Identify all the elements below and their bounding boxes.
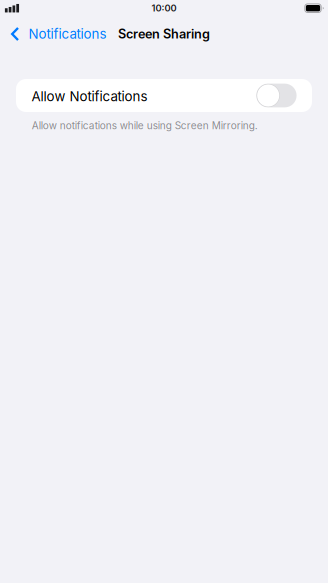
staticText: Allow notifications while using Screen M… xyxy=(32,119,258,132)
staticText: Screen Sharing xyxy=(118,26,210,42)
staticText: Notifications xyxy=(28,26,106,42)
button[interactable]: Allow Notifications xyxy=(16,79,312,112)
staticText: 10:00 xyxy=(151,3,176,14)
button[interactable]: Notifications xyxy=(0,20,114,48)
staticText: Allow Notifications xyxy=(31,88,147,104)
